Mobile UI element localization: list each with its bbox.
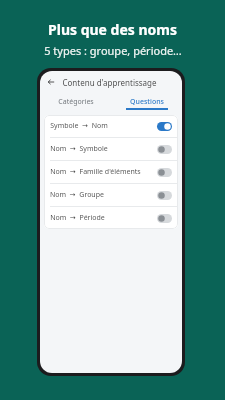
staticText: Nom → Symbole xyxy=(50,144,108,154)
button[interactable]: Back xyxy=(40,71,62,93)
button[interactable]: Catégories xyxy=(40,93,111,110)
staticText: Symbole → Nom xyxy=(50,121,108,131)
staticText: Questions xyxy=(130,97,164,107)
button[interactable]: Nom → Groupe xyxy=(44,184,178,206)
staticText: 5 types : groupe, période… xyxy=(44,43,182,58)
button[interactable]: Nom → Symbole xyxy=(44,138,178,160)
staticText: Contenu d'apprentissage xyxy=(62,77,157,88)
button[interactable]: Nom → Famille d'éléments xyxy=(44,161,178,183)
staticText: Catégories xyxy=(58,97,94,107)
staticText: Plus que des noms xyxy=(48,20,177,39)
staticText: Nom → Famille d'éléments xyxy=(50,167,141,177)
staticText: Nom → Groupe xyxy=(50,190,104,200)
button[interactable]: Nom → Période xyxy=(44,207,178,229)
button[interactable]: Questions xyxy=(111,93,182,110)
button[interactable]: Symbole → Nom xyxy=(44,115,178,137)
staticText: Nom → Période xyxy=(50,213,105,223)
